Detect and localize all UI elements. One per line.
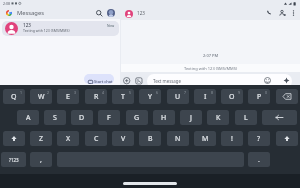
staticText: 8 bbox=[211, 90, 214, 95]
staticText: 7 bbox=[184, 90, 187, 95]
staticText: Y bbox=[148, 92, 152, 102]
button[interactable] bbox=[262, 110, 297, 125]
staticText: 2:08 bbox=[3, 1, 11, 6]
staticText: 123 bbox=[137, 10, 145, 16]
staticText: M bbox=[202, 134, 209, 144]
button[interactable]: B bbox=[139, 131, 161, 146]
button[interactable]: C bbox=[85, 131, 107, 146]
staticText: X bbox=[66, 134, 71, 144]
staticText: R bbox=[94, 92, 99, 102]
button[interactable]: ! bbox=[221, 131, 243, 146]
staticText: 1 bbox=[20, 90, 23, 95]
staticText: ? bbox=[257, 134, 261, 144]
staticText: 5 bbox=[129, 90, 132, 95]
staticText: G bbox=[134, 113, 140, 123]
staticText: Messages bbox=[17, 9, 44, 17]
staticText: P bbox=[257, 92, 262, 102]
staticText: N bbox=[175, 134, 181, 144]
button[interactable]: Z bbox=[30, 131, 52, 146]
staticText: . bbox=[258, 155, 260, 165]
button[interactable] bbox=[107, 9, 115, 17]
staticText: , bbox=[40, 155, 42, 165]
staticText: U bbox=[175, 92, 181, 102]
button[interactable]: F bbox=[98, 110, 120, 125]
staticText: 2 bbox=[47, 90, 50, 95]
button[interactable]: R bbox=[85, 89, 107, 104]
button[interactable]: K bbox=[207, 110, 229, 125]
staticText: ?123 bbox=[9, 157, 19, 163]
button[interactable] bbox=[292, 10, 295, 16]
button[interactable]: , bbox=[30, 152, 52, 167]
button[interactable]: X bbox=[57, 131, 79, 146]
button[interactable]: M bbox=[194, 131, 216, 146]
button[interactable]: N bbox=[167, 131, 189, 146]
button[interactable]: . bbox=[248, 152, 270, 167]
staticText: S bbox=[53, 113, 57, 123]
staticText: W bbox=[38, 92, 45, 102]
button[interactable] bbox=[279, 10, 286, 17]
button[interactable]: G bbox=[126, 110, 148, 125]
button[interactable]: P bbox=[248, 89, 270, 104]
staticText: D bbox=[79, 113, 85, 123]
staticText: Q bbox=[11, 92, 17, 102]
button[interactable]: 123 bbox=[2, 21, 119, 36]
button[interactable]: ?123 bbox=[1, 152, 26, 167]
button[interactable] bbox=[135, 77, 143, 85]
staticText: 3 bbox=[74, 90, 77, 95]
staticText: Texting with 123 (SMS/MMS) bbox=[23, 28, 70, 33]
staticText: A bbox=[26, 113, 31, 123]
staticText: H bbox=[161, 113, 167, 123]
button[interactable]: E bbox=[57, 89, 79, 104]
button[interactable]: I bbox=[194, 89, 216, 104]
staticText: Z bbox=[39, 134, 44, 144]
button[interactable]: ? bbox=[248, 131, 270, 146]
staticText: Texting with 123 (SMS/MMS) bbox=[184, 66, 238, 71]
button[interactable] bbox=[96, 10, 103, 17]
button[interactable]: H bbox=[153, 110, 175, 125]
staticText: I bbox=[204, 92, 207, 102]
staticText: 6 bbox=[156, 90, 159, 95]
button[interactable]: D bbox=[71, 110, 93, 125]
button[interactable]: U bbox=[167, 89, 189, 104]
button[interactable]: T bbox=[112, 89, 134, 104]
staticText: T bbox=[121, 92, 125, 102]
button[interactable] bbox=[123, 77, 131, 85]
button[interactable]: Text message bbox=[147, 74, 292, 88]
button[interactable]: S bbox=[44, 110, 66, 125]
button[interactable] bbox=[276, 89, 298, 104]
button[interactable]: J bbox=[180, 110, 202, 125]
staticText: C bbox=[94, 134, 99, 144]
staticText: F bbox=[107, 113, 111, 123]
staticText: Now bbox=[107, 23, 115, 28]
staticText: 123 bbox=[23, 22, 31, 28]
staticText: B bbox=[148, 134, 153, 144]
staticText: K bbox=[216, 113, 221, 123]
staticText: 0 bbox=[265, 90, 268, 95]
staticText: 2:07 PM bbox=[203, 53, 219, 58]
staticText: 9 bbox=[238, 90, 241, 95]
button[interactable]: W bbox=[30, 89, 52, 104]
staticText: Start chat bbox=[94, 79, 113, 84]
button[interactable] bbox=[3, 131, 25, 146]
staticText: O bbox=[229, 92, 235, 102]
button[interactable]: Q bbox=[3, 89, 25, 104]
staticText: J bbox=[190, 113, 192, 123]
staticText: 4 bbox=[102, 90, 105, 95]
button[interactable]: A bbox=[17, 110, 39, 125]
button[interactable] bbox=[267, 10, 273, 16]
button[interactable]: Start chat bbox=[84, 74, 114, 84]
button[interactable]: V bbox=[112, 131, 134, 146]
button[interactable]: L bbox=[235, 110, 257, 125]
staticText: E bbox=[66, 92, 70, 102]
staticText: ! bbox=[231, 134, 233, 144]
button[interactable] bbox=[276, 131, 298, 146]
staticText: L bbox=[244, 113, 248, 123]
button[interactable]: O bbox=[221, 89, 243, 104]
staticText: Text message bbox=[153, 78, 181, 84]
staticText: V bbox=[121, 134, 126, 144]
button[interactable]: Y bbox=[139, 89, 161, 104]
